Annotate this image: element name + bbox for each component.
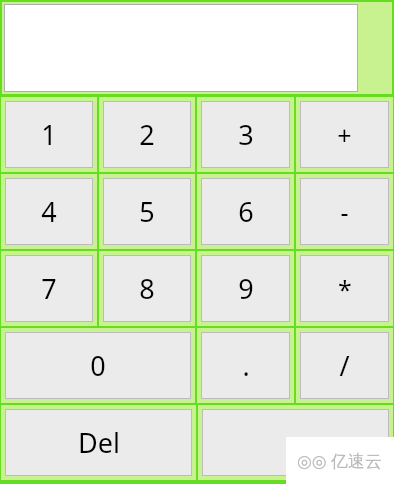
button[interactable]: 8 bbox=[99, 251, 195, 326]
staticText: 7 bbox=[41, 270, 57, 307]
staticText: 1 bbox=[41, 116, 57, 153]
button[interactable]: 4 bbox=[1, 174, 97, 249]
staticText: ◎◎ 亿速云 bbox=[297, 449, 383, 472]
button[interactable]: = bbox=[198, 405, 393, 480]
button[interactable]: + bbox=[296, 97, 393, 172]
staticText: . bbox=[242, 347, 250, 384]
staticText: Del bbox=[78, 424, 120, 461]
staticText: + bbox=[337, 118, 352, 152]
button[interactable]: Del bbox=[1, 405, 196, 480]
staticText: * bbox=[338, 272, 352, 306]
staticText: 8 bbox=[139, 270, 155, 307]
button[interactable]: 1 bbox=[1, 97, 97, 172]
button[interactable]: / bbox=[296, 328, 393, 403]
button[interactable]: 0 bbox=[1, 328, 195, 403]
button[interactable]: . bbox=[197, 328, 294, 403]
button[interactable]: 5 bbox=[99, 174, 195, 249]
button[interactable]: 6 bbox=[197, 174, 294, 249]
staticText: 9 bbox=[238, 270, 254, 307]
button[interactable]: 9 bbox=[197, 251, 294, 326]
staticText: 2 bbox=[139, 116, 155, 153]
staticText: 5 bbox=[139, 193, 155, 230]
staticText: = bbox=[288, 424, 304, 461]
staticText: 3 bbox=[238, 116, 254, 153]
button[interactable]: 2 bbox=[99, 97, 195, 172]
staticText: 4 bbox=[41, 193, 57, 230]
button[interactable]: * bbox=[296, 251, 393, 326]
staticText: / bbox=[339, 347, 350, 384]
button[interactable]: 3 bbox=[197, 97, 294, 172]
staticText: - bbox=[340, 195, 349, 229]
staticText: 0 bbox=[90, 347, 106, 384]
staticText: 6 bbox=[238, 193, 254, 230]
button[interactable]: Calculator display bbox=[4, 4, 358, 92]
button[interactable]: 7 bbox=[1, 251, 97, 326]
button[interactable]: - bbox=[296, 174, 393, 249]
